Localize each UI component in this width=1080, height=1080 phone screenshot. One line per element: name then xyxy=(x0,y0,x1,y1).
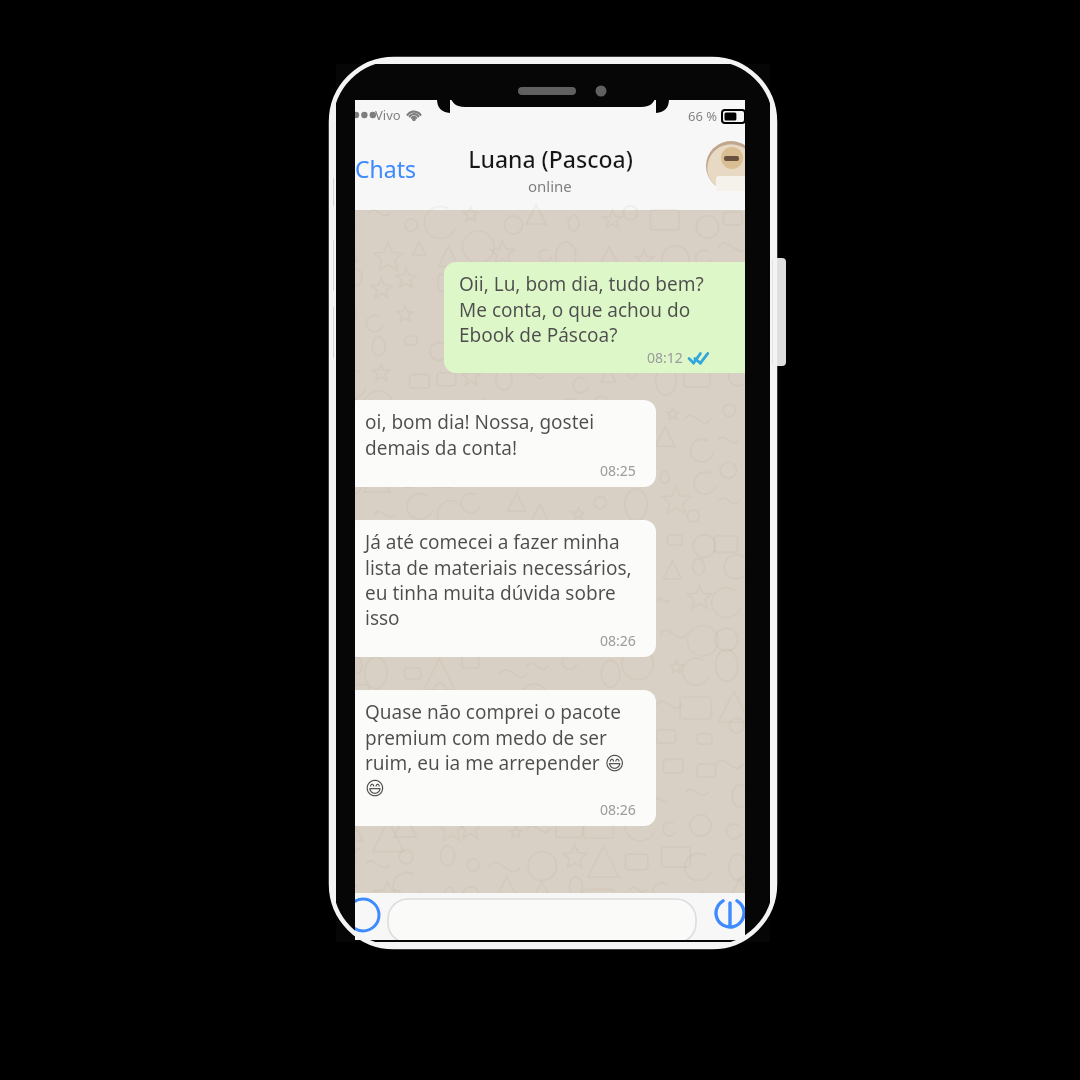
button[interactable]: Luana (Pascoa) xyxy=(420,143,680,196)
button[interactable]: Chats xyxy=(355,150,435,186)
staticText: 08:26 xyxy=(600,631,636,650)
staticText: 08:25 xyxy=(600,461,636,480)
button[interactable]: oi, bom dia! Nossa, gostei demais da con… xyxy=(355,400,656,487)
staticText: Já até comecei a fazer minha lista de ma… xyxy=(365,529,632,630)
button[interactable]: Oii, Lu, bom dia, tudo bem? Me conta, o … xyxy=(444,262,745,373)
staticText: oi, bom dia! Nossa, gostei demais da con… xyxy=(365,409,595,460)
staticText: Vivo xyxy=(375,106,401,124)
other: Contact photo xyxy=(0,0,1080,1080)
staticText: 08:12 xyxy=(647,348,683,367)
staticText: 08:26 xyxy=(600,800,636,819)
staticText: Luana (Pascoa) xyxy=(468,143,633,174)
staticText: 66 % xyxy=(688,107,718,125)
button[interactable]: Já até comecei a fazer minha lista de ma… xyxy=(355,520,656,657)
staticText: Oii, Lu, bom dia, tudo bem? Me conta, o … xyxy=(459,271,704,347)
staticText: online xyxy=(528,176,572,196)
staticText: Quase não comprei o pacote premium com m… xyxy=(365,699,625,799)
staticText: Chats xyxy=(355,153,416,184)
button[interactable]: Quase não comprei o pacote premium com m… xyxy=(355,690,656,826)
